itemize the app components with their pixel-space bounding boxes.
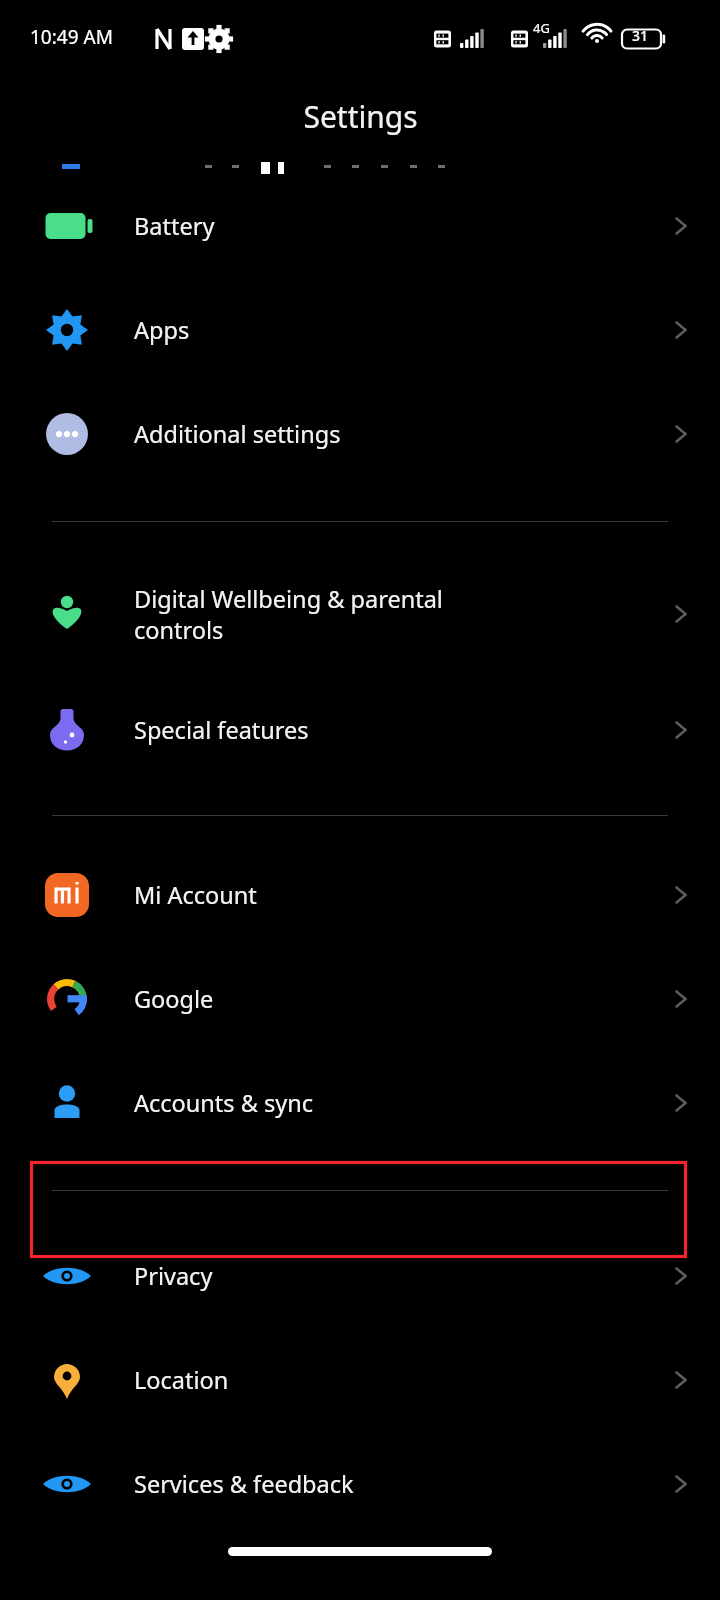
staticText: 4G	[533, 19, 550, 37]
button[interactable]	[0, 152, 720, 174]
staticText: Accounts & sync	[134, 1087, 314, 1119]
staticText: Privacy	[134, 1260, 213, 1292]
button[interactable]: Apps	[0, 278, 720, 382]
button[interactable]: Special features	[0, 673, 720, 787]
button[interactable]: Privacy	[0, 1224, 720, 1328]
staticText: Location	[134, 1364, 229, 1396]
button[interactable]: Additional settings	[0, 382, 720, 486]
staticText: Settings	[303, 96, 418, 137]
staticText: Services & feedback	[134, 1468, 354, 1500]
staticText: Special features	[134, 714, 309, 746]
staticText: Additional settings	[134, 418, 341, 450]
staticText: Mi Account	[134, 879, 257, 911]
button[interactable]: Google	[0, 947, 720, 1051]
staticText: Battery	[134, 210, 215, 242]
button[interactable]: Battery	[0, 174, 720, 278]
staticText: Google	[134, 983, 214, 1015]
staticText: Apps	[134, 314, 190, 346]
staticText: Digital Wellbeing & parental controls	[134, 583, 443, 645]
button[interactable]: Accounts & sync	[0, 1051, 720, 1155]
button[interactable]: Services & feedback	[0, 1432, 720, 1536]
staticText: 31	[632, 26, 649, 45]
button[interactable]: Location	[0, 1328, 720, 1432]
button[interactable]: Mi Account	[0, 843, 720, 947]
staticText: 10:49 AM	[30, 24, 113, 50]
button[interactable]: Digital Wellbeing & parental controls	[0, 555, 720, 673]
